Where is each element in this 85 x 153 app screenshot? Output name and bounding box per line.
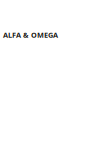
staticText: ALFA & OMEGA: [3, 30, 58, 40]
